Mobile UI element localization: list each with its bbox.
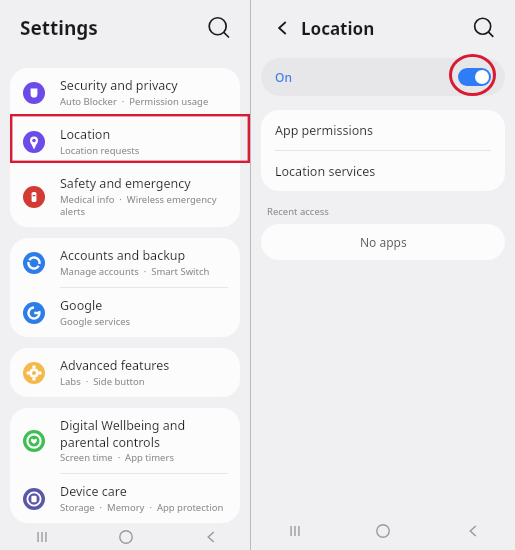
button[interactable]: Safety and emergency	[10, 166, 240, 227]
staticText: On	[275, 69, 292, 85]
staticText: Recent access	[267, 205, 329, 218]
staticText: Settings	[20, 15, 98, 41]
staticText: Storage · Memory · App protection	[60, 501, 224, 514]
button[interactable]: Advanced features	[10, 348, 240, 397]
staticText: Auto Blocker · Permission usage	[60, 95, 209, 108]
button[interactable]: Security and privacy	[10, 68, 240, 117]
staticText: Screen time · App timers	[60, 451, 174, 464]
staticText: Accounts and backup	[60, 247, 186, 264]
staticText: No apps	[360, 234, 407, 250]
staticText: Google services	[60, 315, 131, 328]
button[interactable]: Recents	[0, 523, 84, 550]
staticText: Manage accounts · Smart Switch	[60, 265, 210, 278]
button[interactable]: App permissions	[261, 110, 505, 150]
button[interactable]: Recents	[251, 512, 339, 550]
button[interactable]: Home	[339, 512, 427, 550]
button[interactable]: No apps	[261, 224, 505, 260]
staticText: Medical info · Wireless emergency alerts	[60, 193, 228, 218]
staticText: Google	[60, 297, 103, 314]
staticText: Digital Wellbeing and parental controls	[60, 417, 228, 450]
staticText: Safety and emergency	[60, 175, 191, 192]
button[interactable]: Accounts and backup	[10, 238, 240, 288]
button[interactable]: Back	[265, 13, 295, 43]
button[interactable]: Back	[427, 512, 515, 550]
staticText: Location	[301, 17, 375, 40]
button[interactable]: Search	[202, 11, 236, 45]
button[interactable]: On	[261, 58, 505, 96]
button[interactable]: Location	[10, 117, 240, 166]
staticText: Advanced features	[60, 357, 170, 374]
button[interactable]: Back	[167, 523, 250, 550]
button[interactable]: Search	[467, 11, 501, 45]
button[interactable]: Digital Wellbeing and parental controls	[10, 408, 240, 474]
button[interactable]: Home	[84, 523, 167, 550]
staticText: Labs · Side button	[60, 375, 145, 388]
staticText: Location services	[275, 163, 376, 180]
staticText: Security and privacy	[60, 77, 178, 94]
button[interactable]: Location services	[261, 151, 505, 191]
staticText: Location	[60, 126, 111, 143]
button[interactable]: Google	[10, 288, 240, 337]
staticText: Location requests	[60, 144, 140, 157]
staticText: Device care	[60, 483, 127, 500]
staticText: App permissions	[275, 122, 373, 139]
button[interactable]: Device care	[10, 474, 240, 523]
